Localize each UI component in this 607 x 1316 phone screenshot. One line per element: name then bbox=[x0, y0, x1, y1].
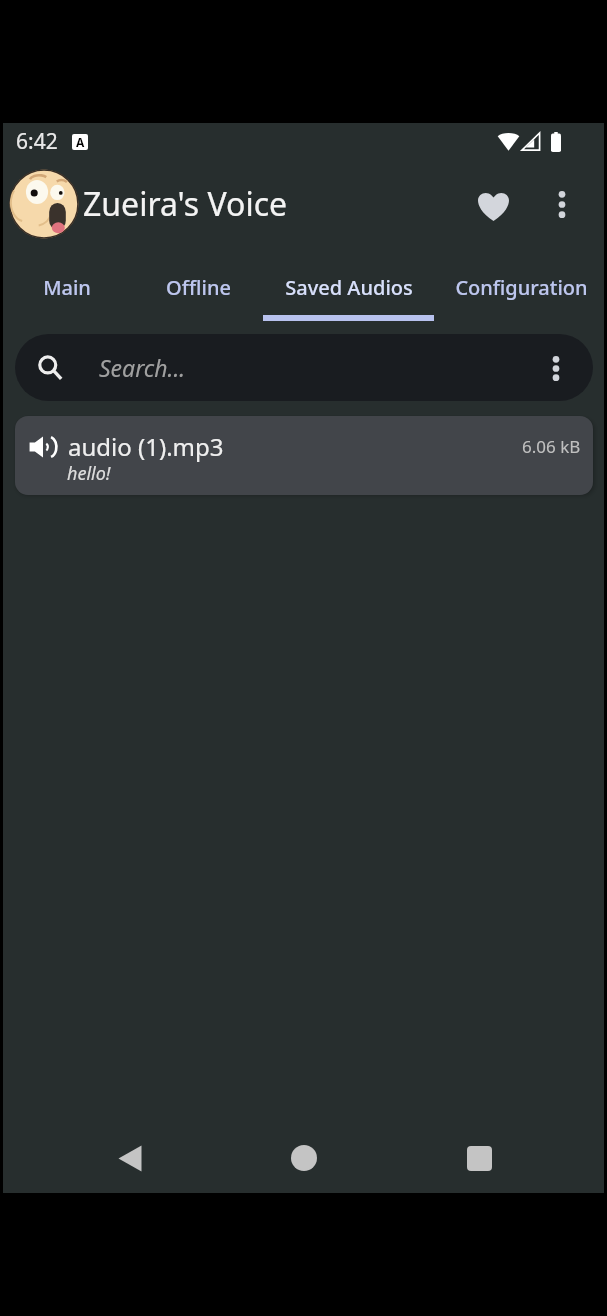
button[interactable]: Favorite bbox=[467, 178, 519, 230]
staticText: Main bbox=[43, 274, 91, 301]
button[interactable]: Offline bbox=[133, 247, 263, 321]
staticText: Zueira's Voice bbox=[83, 182, 288, 226]
staticText: A bbox=[76, 134, 85, 150]
button[interactable]: audio (1).mp3 bbox=[15, 416, 593, 495]
staticText: hello! bbox=[67, 461, 111, 486]
button[interactable]: Back bbox=[114, 1142, 146, 1174]
staticText: Search... bbox=[99, 352, 186, 383]
staticText: 6:42 bbox=[16, 127, 58, 156]
button[interactable]: Configuration bbox=[434, 247, 601, 321]
button[interactable]: Home bbox=[288, 1142, 320, 1174]
staticText: Offline bbox=[166, 274, 231, 301]
staticText: audio (1).mp3 bbox=[68, 430, 224, 463]
button[interactable]: Search options bbox=[534, 346, 578, 390]
staticText: Saved Audios bbox=[285, 274, 413, 301]
staticText: Configuration bbox=[455, 274, 588, 301]
button[interactable]: Search... bbox=[15, 334, 593, 401]
button[interactable]: More options bbox=[540, 182, 584, 226]
staticText: 6.06 kB bbox=[522, 435, 581, 458]
button[interactable]: Saved Audios bbox=[263, 247, 434, 321]
button[interactable]: Main bbox=[0, 247, 133, 321]
button[interactable]: Recents bbox=[463, 1142, 495, 1174]
